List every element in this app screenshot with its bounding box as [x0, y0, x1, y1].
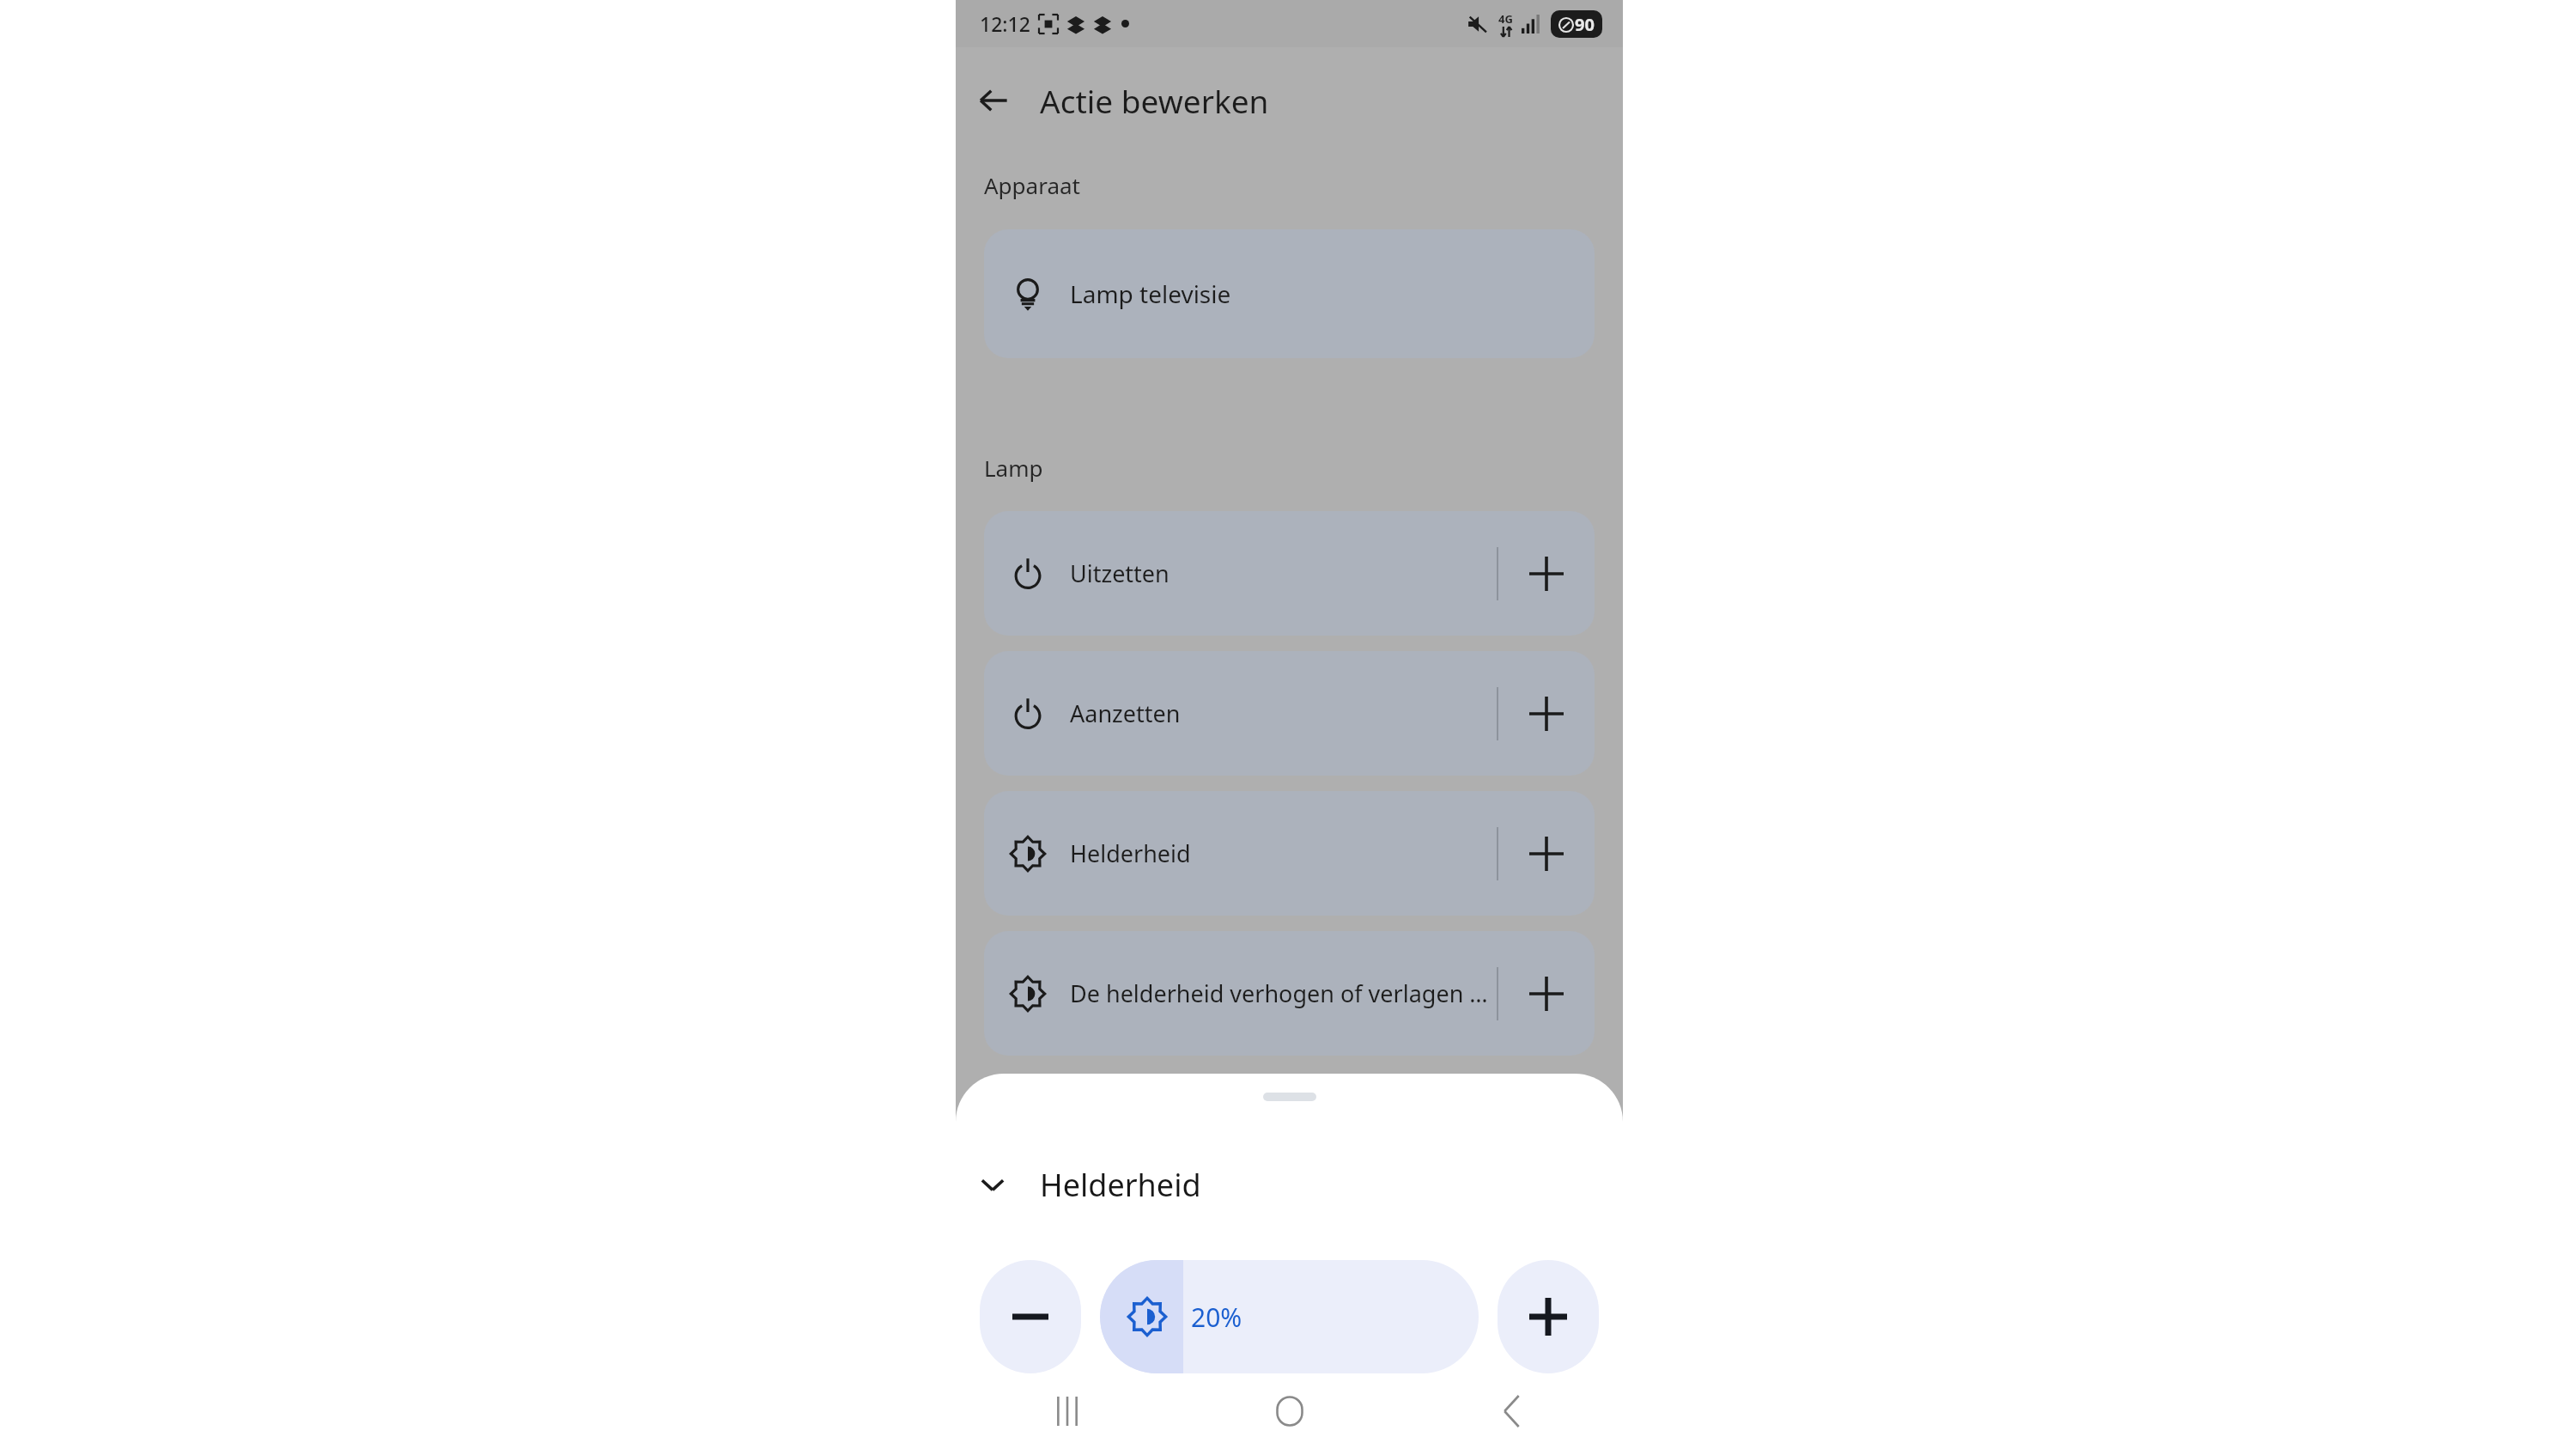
button[interactable]: Lamp televisie — [984, 229, 1595, 358]
button[interactable]: Aanzetten — [984, 651, 1595, 776]
button[interactable]: Toevoegen — [1498, 511, 1595, 636]
button[interactable]: Toevoegen — [1498, 651, 1595, 776]
button[interactable]: Toevoegen — [1498, 931, 1595, 1056]
button[interactable]: Terug — [963, 70, 1024, 131]
button[interactable]: Samenvouwen — [963, 1154, 1023, 1215]
staticText: Helderheid — [1040, 1164, 1201, 1206]
button[interactable]: Start — [1178, 1373, 1400, 1449]
button[interactable]: Uitzetten — [984, 511, 1595, 636]
staticText: Apparaat — [984, 170, 1080, 200]
staticText: Uitzetten — [1070, 557, 1497, 589]
staticText: Lamp — [984, 453, 1043, 483]
button[interactable]: Helderheid — [984, 791, 1595, 916]
button[interactable]: 20% — [1100, 1260, 1479, 1373]
button[interactable]: Verlagen — [980, 1260, 1081, 1373]
staticText: 20% — [1191, 1300, 1242, 1335]
staticText: Actie bewerken — [1040, 79, 1269, 122]
button[interactable]: Recente apps — [956, 1373, 1178, 1449]
staticText: Lamp televisie — [1070, 277, 1231, 310]
staticText: 90 — [1575, 13, 1595, 36]
button[interactable]: Toevoegen — [1498, 791, 1595, 916]
button[interactable]: Terug — [1400, 1373, 1623, 1449]
staticText: Aanzetten — [1070, 697, 1497, 729]
staticText: Helderheid — [1070, 837, 1497, 869]
staticText: 12:12 — [980, 10, 1030, 37]
button[interactable]: De helderheid verhogen of verlagen met — [984, 931, 1595, 1056]
staticText: De helderheid verhogen of verlagen met — [1070, 977, 1497, 1009]
button[interactable]: Verhogen — [1498, 1260, 1599, 1373]
staticText: 4G — [1498, 11, 1513, 27]
